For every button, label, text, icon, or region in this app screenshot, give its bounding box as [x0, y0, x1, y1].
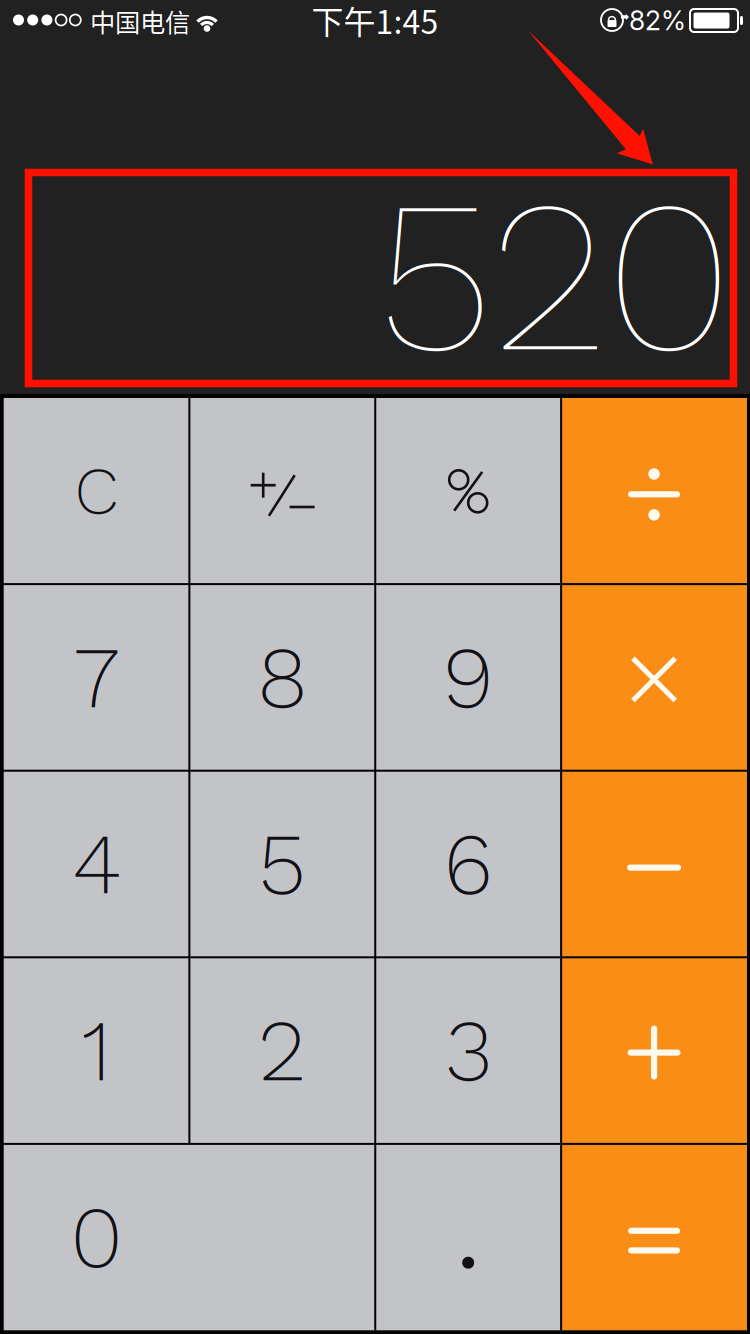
button[interactable]: Divide [561, 397, 747, 584]
button[interactable]: 3 [375, 957, 561, 1144]
button[interactable]: Percent [375, 397, 561, 584]
button[interactable]: C [3, 397, 189, 584]
button[interactable]: 0 [3, 1144, 375, 1330]
button[interactable]: 8 [189, 584, 375, 771]
button[interactable]: Equals [561, 1144, 747, 1330]
button[interactable]: 5 [189, 771, 375, 957]
staticText: 7 [74, 627, 119, 728]
staticText: 5 [258, 813, 306, 915]
staticText: 3 [445, 1000, 491, 1101]
button[interactable]: Decimal point [375, 1144, 561, 1330]
staticText: 6 [444, 813, 493, 915]
staticText: 1 [81, 1000, 111, 1101]
staticText: 82% [629, 4, 686, 37]
button[interactable]: Subtract [561, 771, 747, 957]
button[interactable]: 7 [3, 584, 189, 771]
staticText: C [74, 452, 118, 530]
staticText: 下午1:45 [311, 0, 438, 43]
button[interactable]: 4 [3, 771, 189, 957]
button[interactable]: Add [561, 957, 747, 1144]
staticText: 2 [258, 1000, 306, 1101]
button[interactable]: 2 [189, 957, 375, 1144]
button[interactable]: 6 [375, 771, 561, 957]
staticText: 520 [378, 151, 732, 401]
staticText: 中国电信 [90, 3, 190, 39]
button[interactable]: 9 [375, 584, 561, 771]
button[interactable]: Multiply [561, 584, 747, 771]
staticText: 4 [72, 813, 121, 915]
staticText: 8 [257, 627, 307, 728]
staticText: 0 [70, 1186, 122, 1288]
button[interactable]: Plus minus [189, 397, 375, 584]
button[interactable]: 1 [3, 957, 189, 1144]
staticText: 9 [443, 627, 494, 728]
